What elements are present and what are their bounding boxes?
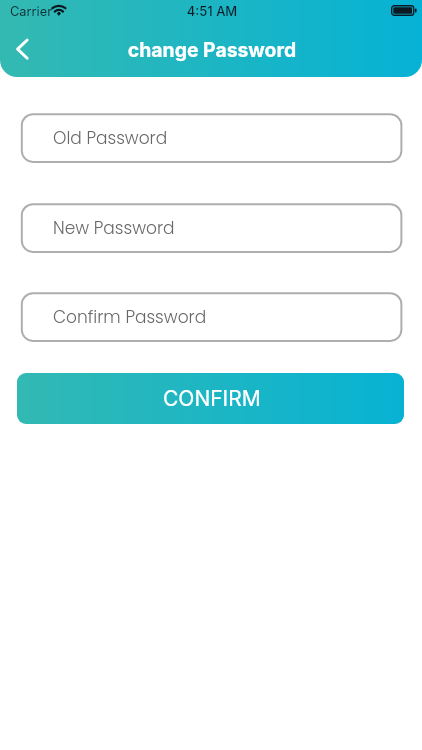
button[interactable]: Back bbox=[4, 31, 40, 67]
staticText: Old Password bbox=[53, 126, 168, 150]
staticText: 4:51 AM bbox=[1, 3, 422, 19]
button[interactable]: Old Password bbox=[19, 111, 403, 164]
staticText: Carrier bbox=[10, 4, 52, 19]
staticText: change Password bbox=[1, 38, 422, 61]
staticText: Confirm Password bbox=[53, 305, 207, 329]
staticText: New Password bbox=[53, 216, 175, 240]
button[interactable]: Confirm Password bbox=[19, 290, 403, 343]
staticText: CONFIRM bbox=[163, 386, 261, 411]
button[interactable]: CONFIRM bbox=[17, 373, 404, 424]
button[interactable]: New Password bbox=[19, 201, 403, 254]
